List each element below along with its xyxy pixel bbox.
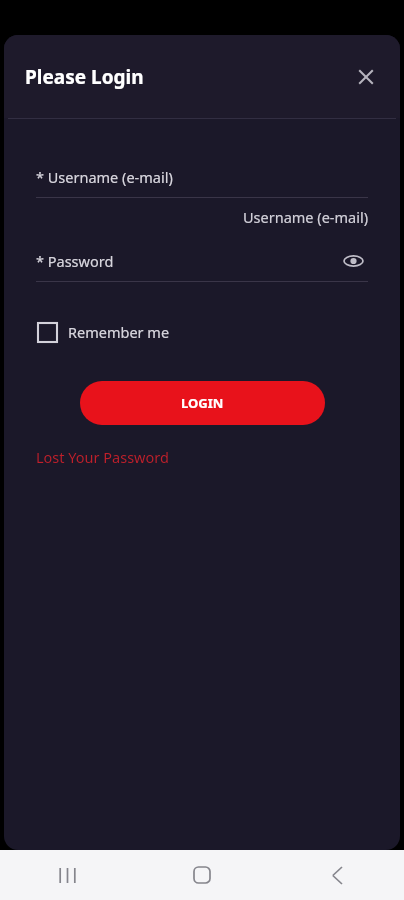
staticText: * Password	[36, 251, 114, 271]
button[interactable]: Back	[269, 850, 404, 900]
button[interactable]: Remember me	[36, 318, 172, 346]
staticText: Username (e-mail)	[36, 207, 368, 227]
staticText: Please Login	[25, 64, 144, 90]
staticText: Remember me	[68, 322, 170, 342]
button[interactable]: Recent apps	[0, 850, 134, 900]
button[interactable]: Close	[344, 55, 388, 99]
button[interactable]: * Username (e-mail)	[36, 167, 368, 197]
button[interactable]: * Password	[36, 251, 368, 281]
button[interactable]: Home	[134, 850, 269, 900]
button[interactable]: LOGIN	[80, 381, 325, 425]
staticText: * Username (e-mail)	[36, 167, 173, 187]
button[interactable]: Show password	[338, 246, 368, 276]
staticText: LOGIN	[181, 394, 224, 412]
button[interactable]: Lost Your Password	[36, 443, 169, 471]
staticText: Lost Your Password	[36, 447, 169, 467]
